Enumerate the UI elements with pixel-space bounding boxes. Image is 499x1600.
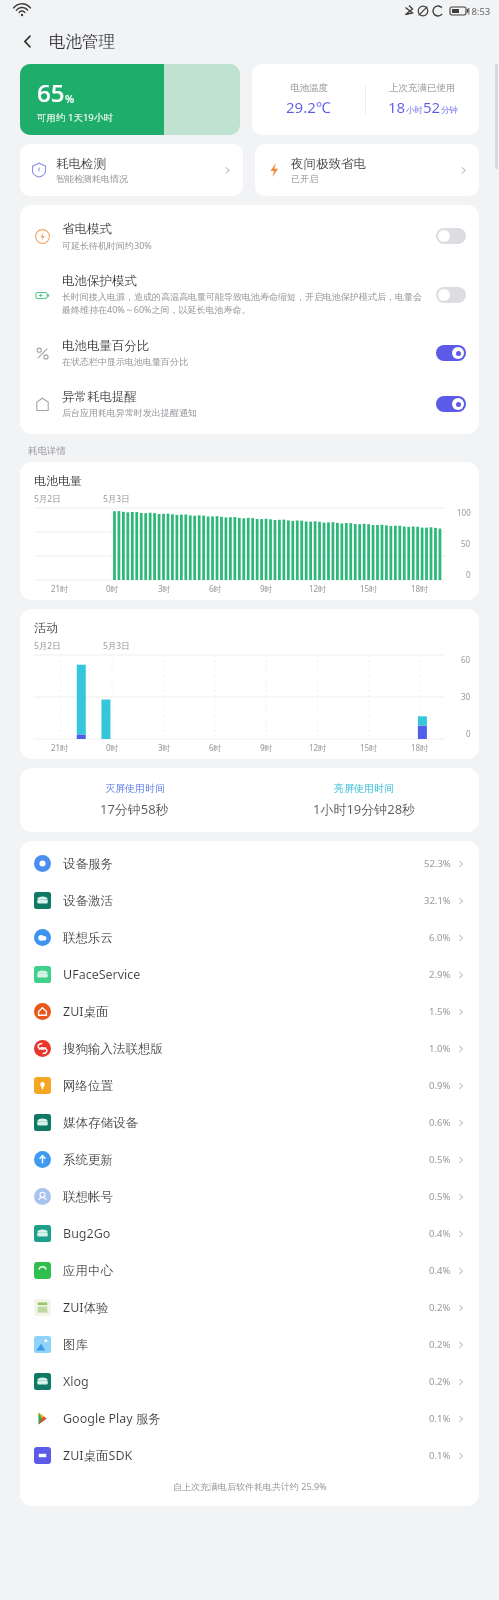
- staticText: 搜狗输入法联想版: [63, 1041, 429, 1057]
- staticText: 21时: [51, 583, 69, 594]
- staticText: 18:53: [466, 5, 491, 18]
- button[interactable]: ZUI桌面: [20, 993, 479, 1030]
- staticText: 30: [461, 691, 471, 702]
- staticText: 52.3%: [424, 857, 451, 870]
- staticText: 电池管理: [49, 31, 115, 52]
- staticText: 0.4%: [429, 1227, 451, 1240]
- staticText: Bug2Go: [63, 1225, 429, 1242]
- staticText: 小时: [406, 105, 423, 116]
- staticText: 亮屏使用时间: [334, 782, 394, 795]
- staticText: 媒体存储设备: [63, 1115, 429, 1131]
- button[interactable]: 设备服务: [20, 845, 479, 882]
- button[interactable]: 耗电检测: [20, 144, 243, 196]
- staticText: 32.1%: [424, 894, 451, 907]
- staticText: 上次充满已使用: [389, 82, 456, 94]
- staticText: 0: [466, 569, 471, 580]
- button[interactable]: 图库: [20, 1326, 479, 1363]
- staticText: 长时间接入电源，造成的高温高电量可能导致电池寿命缩短，开启电池保护模式后，电量会…: [62, 291, 426, 316]
- button[interactable]: ZUI体验: [20, 1289, 479, 1326]
- staticText: 17分钟58秒: [100, 800, 169, 818]
- button[interactable]: 异常耗电提醒: [436, 396, 466, 412]
- staticText: 0时: [106, 583, 119, 594]
- staticText: 0.4%: [429, 1264, 451, 1277]
- staticText: 9时: [260, 583, 273, 594]
- button[interactable]: 异常耗电提醒: [20, 378, 479, 429]
- staticText: 50: [461, 538, 471, 549]
- staticText: 1小时19分钟28秒: [313, 800, 416, 818]
- button[interactable]: 电池电量百分比: [436, 345, 466, 361]
- staticText: 系统更新: [63, 1152, 429, 1168]
- staticText: 电池保护模式: [62, 273, 137, 289]
- staticText: 异常耗电提醒: [62, 389, 137, 405]
- button[interactable]: 网络位置: [20, 1067, 479, 1104]
- button[interactable]: 媒体存储设备: [20, 1104, 479, 1141]
- staticText: %: [65, 91, 75, 106]
- staticText: 智能检测耗电情况: [56, 173, 128, 184]
- button[interactable]: 电池保护模式: [20, 262, 479, 327]
- staticText: Google Play 服务: [63, 1410, 429, 1427]
- staticText: 18时: [411, 583, 429, 594]
- staticText: 0.5%: [429, 1153, 451, 1166]
- button[interactable]: 联想帐号: [20, 1178, 479, 1215]
- staticText: 设备激活: [63, 893, 424, 909]
- staticText: 15时: [360, 742, 378, 753]
- staticText: 6.0%: [429, 931, 451, 944]
- button[interactable]: 系统更新: [20, 1141, 479, 1178]
- button[interactable]: ZUI桌面SDK: [20, 1437, 479, 1474]
- button[interactable]: Xlog: [20, 1363, 479, 1400]
- button[interactable]: Back: [12, 26, 42, 56]
- button[interactable]: 设备激活: [20, 882, 479, 919]
- button[interactable]: 灭屏使用时间: [20, 768, 249, 832]
- button[interactable]: 电池保护模式: [436, 287, 466, 303]
- staticText: 电池电量百分比: [62, 338, 150, 354]
- staticText: 3时: [158, 583, 171, 594]
- button[interactable]: 联想乐云: [20, 919, 479, 956]
- staticText: 0.9%: [429, 1079, 451, 1092]
- staticText: 29.2℃: [286, 97, 331, 117]
- staticText: 9时: [260, 742, 273, 753]
- staticText: 52: [423, 97, 441, 117]
- staticText: 1.5%: [429, 1005, 451, 1018]
- staticText: 6时: [209, 742, 222, 753]
- staticText: Xlog: [63, 1373, 429, 1390]
- button[interactable]: 电池温度: [252, 64, 479, 135]
- staticText: 12时: [309, 583, 327, 594]
- staticText: 联想帐号: [63, 1189, 429, 1205]
- staticText: 15时: [360, 583, 378, 594]
- staticText: 网络位置: [63, 1078, 429, 1094]
- staticText: 已开启: [291, 173, 318, 184]
- button[interactable]: 省电模式: [20, 210, 479, 262]
- staticText: 分钟: [441, 105, 458, 116]
- staticText: 活动: [34, 620, 58, 635]
- staticText: 0时: [106, 742, 119, 753]
- button[interactable]: Google Play 服务: [20, 1400, 479, 1437]
- staticText: ZUI桌面SDK: [63, 1447, 429, 1464]
- button[interactable]: 省电模式: [436, 228, 466, 244]
- button[interactable]: 应用中心: [20, 1252, 479, 1289]
- staticText: 0: [466, 728, 471, 739]
- staticText: 联想乐云: [63, 930, 429, 946]
- staticText: 0.2%: [429, 1338, 451, 1351]
- staticText: 省电模式: [62, 221, 112, 237]
- staticText: 18: [388, 97, 406, 117]
- button[interactable]: 夜间极致省电: [255, 144, 479, 196]
- staticText: 自上次充满电后软件耗电共计约 25.9%: [173, 1480, 327, 1492]
- button[interactable]: Bug2Go: [20, 1215, 479, 1252]
- staticText: 图库: [63, 1337, 429, 1353]
- button[interactable]: UFaceService: [20, 956, 479, 993]
- staticText: 60: [461, 654, 471, 665]
- button[interactable]: 电池电量百分比: [20, 327, 479, 378]
- staticText: 12时: [309, 742, 327, 753]
- button[interactable]: 65: [20, 64, 240, 135]
- staticText: 100: [457, 507, 471, 518]
- staticText: 灭屏使用时间: [105, 782, 165, 795]
- staticText: 5月2日: [34, 640, 61, 652]
- button[interactable]: 搜狗输入法联想版: [20, 1030, 479, 1067]
- button[interactable]: 亮屏使用时间: [249, 768, 479, 832]
- staticText: 18时: [411, 742, 429, 753]
- staticText: 5月3日: [103, 493, 130, 505]
- staticText: 2.9%: [429, 968, 451, 981]
- staticText: 可延长待机时间约30%: [62, 239, 152, 251]
- staticText: 可用约 1天19小时: [37, 111, 113, 124]
- staticText: ZUI桌面: [63, 1003, 429, 1020]
